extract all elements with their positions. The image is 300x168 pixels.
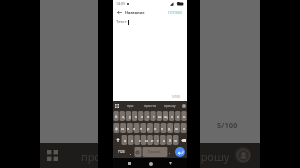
staticText: ж — [175, 126, 178, 131]
staticText: л — [161, 126, 164, 131]
staticText: ю — [174, 138, 178, 143]
button[interactable]: , — [129, 146, 133, 158]
staticText: к — [135, 114, 138, 119]
button[interactable]: е — [139, 110, 145, 122]
button[interactable]: ж — [173, 122, 180, 134]
button[interactable]: Profile — [235, 147, 251, 163]
button[interactable]: Keyboard menu — [113, 102, 120, 109]
staticText: у — [129, 114, 131, 119]
staticText: в — [127, 126, 130, 131]
staticText: просто — [144, 103, 157, 108]
staticText: й — [115, 114, 118, 119]
button[interactable]: э — [180, 122, 187, 134]
staticText: Русский — [148, 150, 160, 154]
button[interactable]: ы — [119, 122, 125, 134]
button[interactable]: Apps — [44, 147, 61, 164]
button[interactable]: к — [133, 110, 139, 122]
button[interactable]: н — [145, 110, 151, 122]
button[interactable]: Emoji — [133, 146, 141, 158]
button[interactable]: прошу — [81, 149, 117, 164]
button[interactable]: Home — [146, 159, 155, 168]
button[interactable]: г — [151, 110, 157, 122]
button[interactable]: ГОТОВО — [167, 8, 184, 17]
staticText: х — [177, 114, 179, 119]
button[interactable]: . — [167, 146, 173, 158]
button[interactable]: Backspace — [179, 134, 187, 146]
button[interactable]: ю — [173, 134, 179, 146]
staticText: е — [141, 114, 144, 119]
button[interactable]: More options — [180, 102, 187, 109]
staticText: т — [157, 138, 159, 143]
staticText: ъ — [183, 114, 186, 119]
button[interactable]: ш — [157, 110, 163, 122]
button[interactable]: ъ — [181, 110, 187, 122]
button[interactable]: х — [175, 110, 181, 122]
button[interactable]: у — [127, 110, 133, 122]
staticText: 5/100 — [217, 120, 238, 130]
staticText: Текст — [116, 19, 127, 25]
staticText: р — [147, 126, 150, 131]
button[interactable]: ц — [120, 110, 127, 122]
staticText: а — [133, 126, 136, 131]
staticText: э — [183, 126, 185, 131]
staticText: прошу — [164, 103, 176, 108]
staticText: ы — [121, 126, 124, 131]
staticText: ь — [163, 138, 166, 143]
button[interactable]: с — [136, 134, 143, 146]
staticText: ц — [122, 114, 125, 119]
button[interactable]: Русский — [141, 146, 167, 158]
staticText: с — [139, 138, 141, 143]
staticText: щ — [164, 114, 168, 119]
staticText: г — [153, 114, 155, 119]
button[interactable]: ч — [129, 134, 136, 146]
staticText: з — [171, 114, 173, 119]
button[interactable]: б — [167, 134, 173, 146]
staticText: , — [130, 150, 132, 155]
staticText: я — [124, 138, 127, 143]
button[interactable]: м — [143, 134, 149, 146]
staticText: ?123 — [118, 150, 125, 154]
button[interactable]: й — [113, 110, 120, 122]
staticText: н — [147, 114, 150, 119]
button[interactable]: прошу — [194, 149, 230, 164]
button[interactable]: ь — [161, 134, 167, 146]
button[interactable]: Shift — [113, 134, 122, 146]
staticText: ш — [158, 114, 162, 119]
button[interactable]: о — [152, 122, 159, 134]
staticText: о — [154, 126, 157, 131]
button[interactable]: р — [145, 122, 152, 134]
button[interactable]: просто — [140, 101, 160, 110]
button[interactable]: л — [159, 122, 166, 134]
staticText: д — [168, 126, 171, 131]
button[interactable]: д — [166, 122, 173, 134]
staticText: ч — [131, 138, 134, 143]
button[interactable]: ф — [113, 122, 119, 134]
staticText: б — [169, 138, 172, 143]
button[interactable]: щ — [163, 110, 169, 122]
button[interactable]: Back — [166, 159, 175, 168]
button[interactable]: т — [155, 134, 161, 146]
staticText: . — [169, 150, 171, 155]
staticText: м — [145, 138, 148, 143]
button[interactable]: про — [120, 101, 140, 110]
staticText: и — [151, 138, 154, 143]
button[interactable]: я — [122, 134, 129, 146]
staticText: 14:05 — [116, 1, 126, 6]
button[interactable]: и — [149, 134, 155, 146]
button[interactable]: Back — [116, 9, 123, 16]
button[interactable]: п — [138, 122, 145, 134]
staticText: 5/100 — [172, 95, 180, 99]
staticText: ГОТОВО — [168, 10, 183, 15]
staticText: Название — [125, 10, 145, 15]
button[interactable]: Enter — [175, 147, 185, 157]
button[interactable]: а — [131, 122, 138, 134]
button[interactable]: прошу — [160, 101, 180, 110]
staticText: про — [127, 103, 134, 108]
button[interactable]: Recents — [125, 159, 134, 168]
button[interactable]: ?123 — [113, 146, 129, 158]
button[interactable]: Текст — [116, 19, 129, 25]
button[interactable]: в — [125, 122, 131, 134]
button[interactable]: з — [169, 110, 175, 122]
staticText: п — [140, 126, 143, 131]
staticText: ф — [115, 126, 118, 131]
